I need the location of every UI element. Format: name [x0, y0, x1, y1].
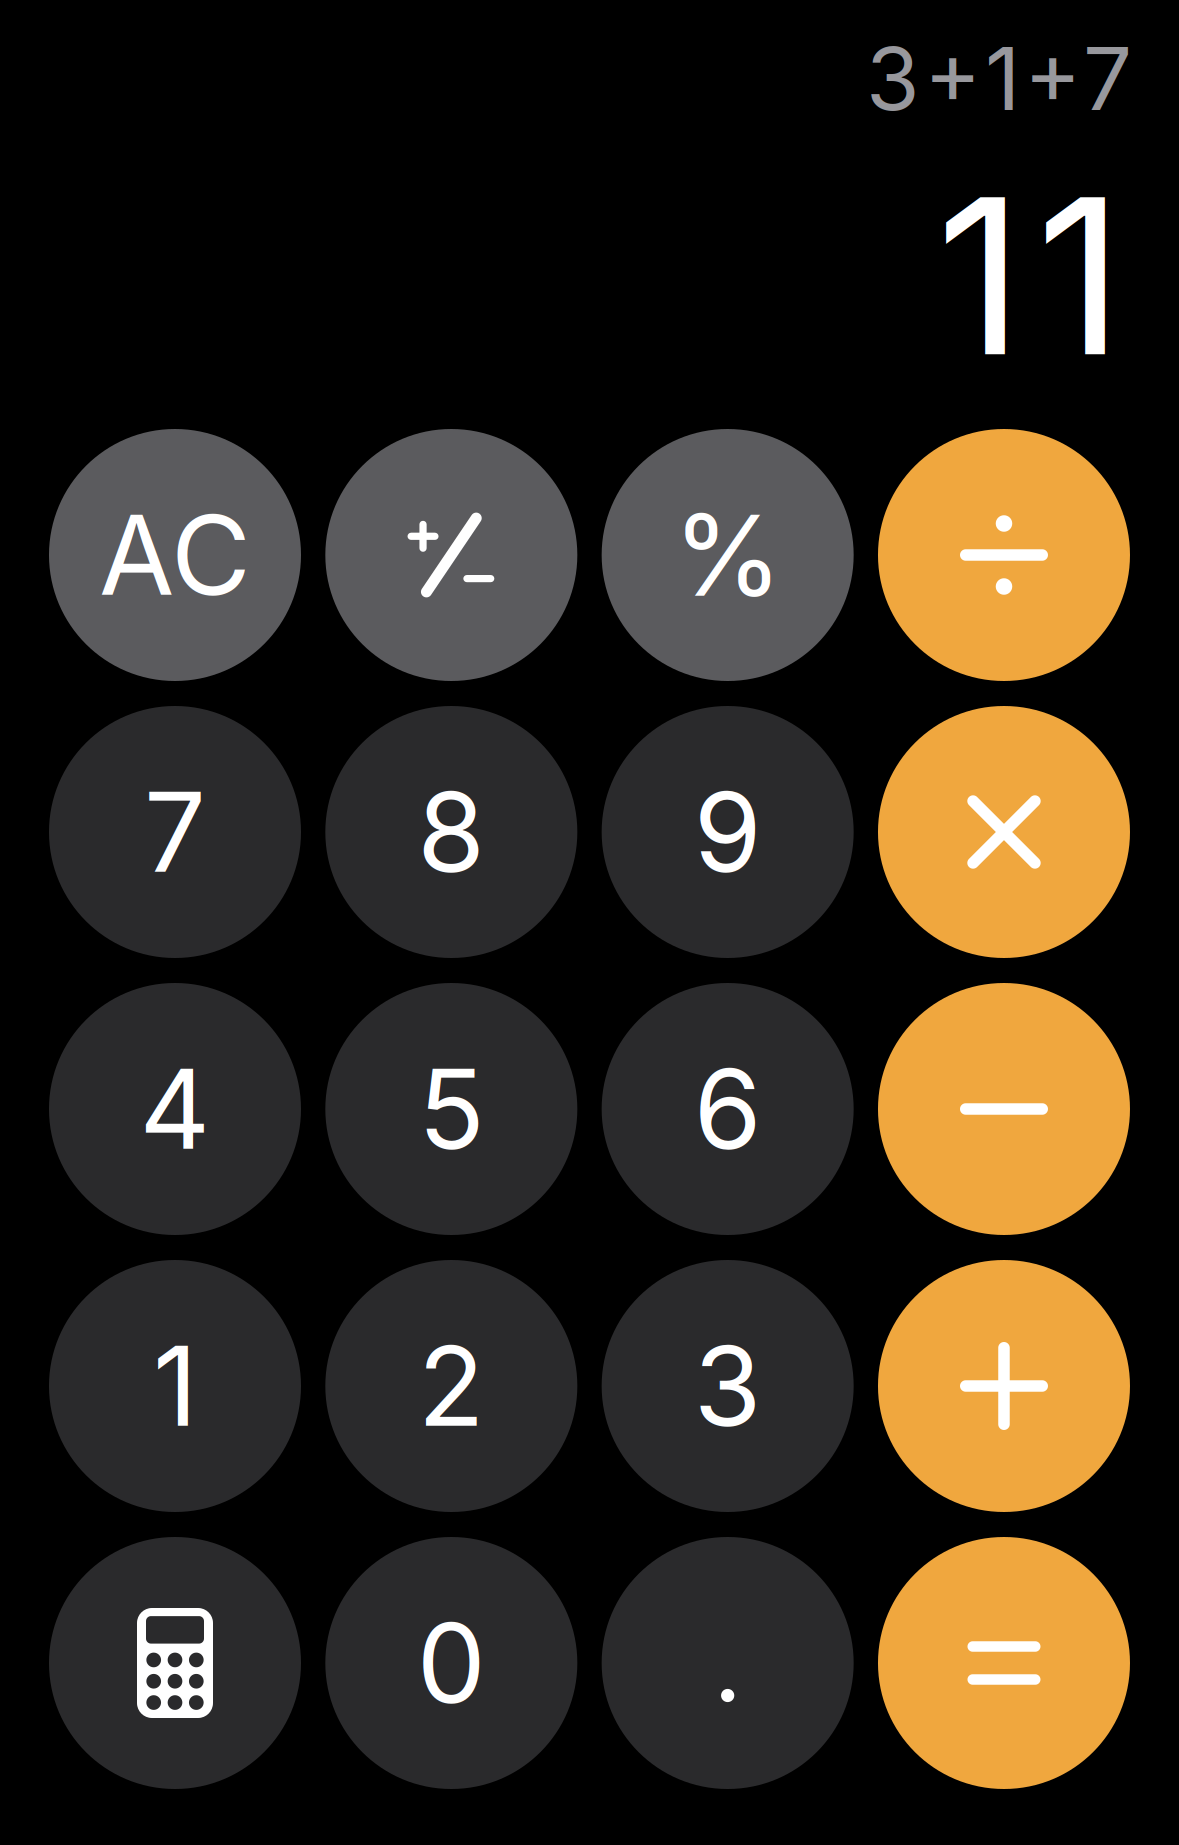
- button[interactable]: 6: [602, 983, 854, 1235]
- button[interactable]: Decimal point: [602, 1537, 854, 1789]
- button[interactable]: 5: [325, 983, 577, 1235]
- button[interactable]: Plus minus: [325, 429, 577, 681]
- button[interactable]: Add: [878, 1260, 1130, 1512]
- staticText: 0: [417, 1597, 486, 1729]
- button[interactable]: AC: [49, 429, 301, 681]
- button[interactable]: 0: [325, 1537, 577, 1789]
- button[interactable]: 2: [325, 1260, 577, 1512]
- staticText: 2: [418, 1320, 485, 1452]
- button[interactable]: Subtract: [878, 983, 1130, 1235]
- staticText: 7: [144, 766, 206, 898]
- button[interactable]: Multiply: [878, 706, 1130, 958]
- button[interactable]: %: [602, 429, 854, 681]
- staticText: 4: [139, 1043, 210, 1175]
- staticText: 3+1+7: [866, 26, 1132, 131]
- button[interactable]: 4: [49, 983, 301, 1235]
- button[interactable]: Equals: [878, 1537, 1130, 1789]
- staticText: 9: [694, 766, 762, 898]
- staticText: %: [673, 487, 783, 623]
- button[interactable]: 9: [602, 706, 854, 958]
- staticText: 11: [936, 145, 1124, 406]
- button[interactable]: Divide: [878, 429, 1130, 681]
- staticText: 5: [418, 1043, 484, 1175]
- button[interactable]: Calculator: [49, 1537, 301, 1789]
- button[interactable]: 1: [49, 1260, 301, 1512]
- staticText: 6: [694, 1043, 762, 1175]
- staticText: 3: [694, 1320, 762, 1452]
- staticText: 1: [153, 1320, 197, 1452]
- staticText: AC: [99, 489, 251, 621]
- button[interactable]: 8: [325, 706, 577, 958]
- button[interactable]: 7: [49, 706, 301, 958]
- staticText: 8: [417, 766, 485, 898]
- button[interactable]: 3: [602, 1260, 854, 1512]
